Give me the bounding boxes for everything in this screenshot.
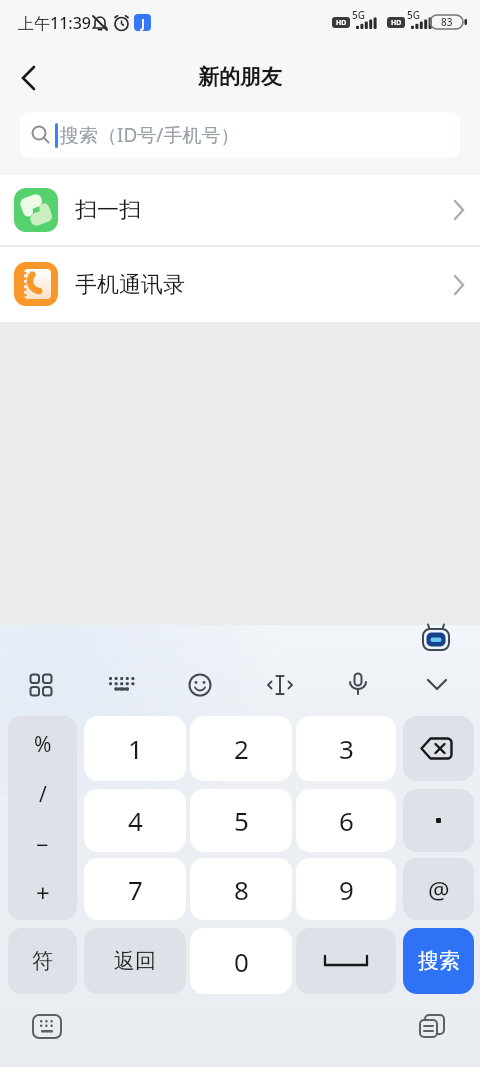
- button[interactable]: [20, 112, 460, 158]
- button[interactable]: [418, 1013, 446, 1041]
- staticText: 4: [128, 803, 143, 838]
- button[interactable]: %: [8, 716, 77, 920]
- button[interactable]: 扫一扫: [0, 175, 480, 245]
- staticText: 7: [128, 872, 143, 907]
- staticText: @: [428, 873, 450, 906]
- button[interactable]: 手机通讯录: [0, 247, 480, 322]
- staticText: 搜索: [418, 948, 460, 974]
- button[interactable]: [420, 622, 452, 654]
- staticText: %: [34, 730, 52, 759]
- staticText: +: [36, 876, 50, 909]
- button[interactable]: [108, 675, 136, 695]
- staticText: 8: [234, 872, 249, 907]
- button[interactable]: 符: [8, 928, 77, 994]
- button[interactable]: [266, 673, 294, 697]
- button[interactable]: 4: [84, 789, 186, 852]
- staticText: 扫一扫: [75, 196, 141, 224]
- staticText: 新的朋友: [198, 64, 282, 90]
- button[interactable]: 2: [190, 716, 292, 781]
- staticText: 手机通讯录: [75, 271, 185, 299]
- button[interactable]: 5: [190, 789, 292, 852]
- staticText: 0: [234, 944, 249, 979]
- staticText: 5: [234, 803, 249, 838]
- button[interactable]: [403, 789, 474, 852]
- button[interactable]: @: [403, 858, 474, 920]
- staticText: 5G: [352, 8, 365, 21]
- button[interactable]: [29, 673, 53, 697]
- staticText: 1: [128, 731, 143, 766]
- staticText: 2: [234, 731, 249, 766]
- button[interactable]: [296, 928, 396, 994]
- button[interactable]: 6: [296, 789, 396, 852]
- staticText: HD: [336, 18, 347, 28]
- staticText: 3: [339, 731, 354, 766]
- staticText: 上午11:39: [18, 12, 91, 34]
- staticText: 5G: [407, 8, 420, 21]
- staticText: 9: [339, 872, 354, 907]
- button[interactable]: 搜索: [403, 928, 474, 994]
- button[interactable]: 8: [190, 858, 292, 920]
- button[interactable]: [188, 673, 212, 697]
- staticText: J: [141, 15, 145, 31]
- staticText: 6: [339, 803, 354, 838]
- staticText: 83: [441, 15, 453, 29]
- staticText: 搜索（ID号/手机号）: [60, 122, 240, 148]
- staticText: /: [39, 780, 47, 809]
- button[interactable]: 1: [84, 716, 186, 781]
- staticText: −: [36, 829, 49, 859]
- button[interactable]: 7: [84, 858, 186, 920]
- staticText: 符: [32, 948, 53, 974]
- staticText: HD: [391, 18, 402, 28]
- button[interactable]: 9: [296, 858, 396, 920]
- button[interactable]: [32, 1013, 62, 1039]
- button[interactable]: 返回: [84, 928, 186, 994]
- button[interactable]: [426, 676, 448, 694]
- button[interactable]: 3: [296, 716, 396, 781]
- button[interactable]: [347, 672, 369, 698]
- staticText: 返回: [114, 948, 156, 974]
- button[interactable]: [10, 58, 50, 98]
- button[interactable]: [403, 716, 474, 781]
- button[interactable]: 0: [190, 928, 292, 994]
